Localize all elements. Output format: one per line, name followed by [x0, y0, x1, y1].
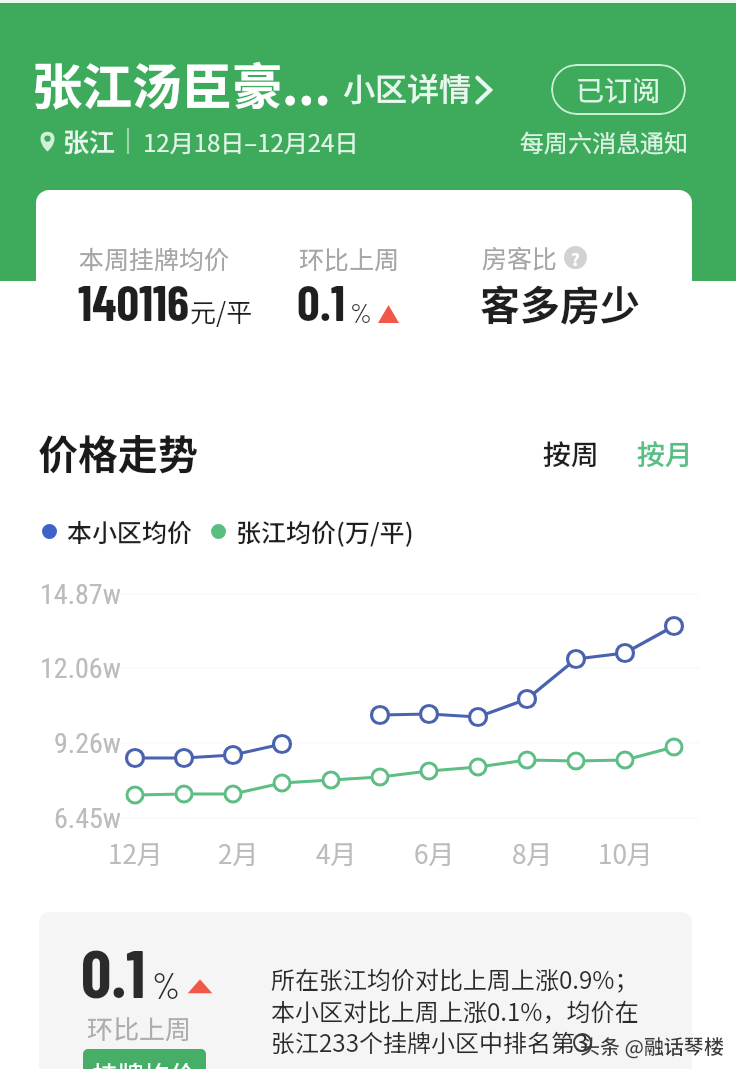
staticText: 9.26w — [54, 727, 122, 760]
staticText: ? — [571, 246, 580, 269]
staticText: 6.45w — [54, 802, 122, 835]
staticText: 张江汤臣豪... — [32, 47, 331, 119]
staticText: 本周挂牌均价 — [79, 240, 230, 276]
staticText: % — [350, 295, 372, 329]
button[interactable]: 小区详情 — [343, 64, 491, 110]
staticText: 所在张江均价对比上周上涨0.9%； — [271, 961, 639, 996]
staticText: 6月 — [414, 834, 455, 872]
staticText: 小区详情 — [343, 64, 472, 110]
staticText: 本小区对比上周上涨0.1%，均价在 — [271, 993, 639, 1028]
button[interactable]: 房客比说明 — [564, 246, 587, 269]
staticText: 张江233个挂牌小区中排名第3 — [271, 1024, 589, 1059]
staticText: 2月 — [218, 834, 259, 872]
staticText: 张江均价(万/平) — [236, 513, 414, 549]
button[interactable]: 按周 — [543, 433, 600, 474]
staticText: 8月 — [512, 834, 553, 872]
staticText: 0.1 — [81, 931, 146, 1011]
staticText: 14.87w — [40, 578, 121, 611]
button[interactable]: 按月 — [637, 433, 694, 474]
staticText: % — [152, 963, 181, 1006]
staticText: 140116 — [78, 271, 190, 331]
staticText: 12月18日–12月24日 — [143, 124, 359, 159]
staticText: 4月 — [316, 834, 357, 872]
staticText: 已订阅 — [576, 69, 661, 110]
button[interactable]: 已订阅 — [551, 64, 686, 115]
staticText: 按周 — [543, 433, 600, 474]
staticText: 本小区均价 — [67, 513, 193, 549]
staticText: 12.06w — [40, 652, 121, 685]
staticText: 挂牌均价 — [92, 1055, 197, 1069]
staticText: 房客比 — [482, 239, 558, 275]
staticText: 客多房少 — [480, 274, 640, 332]
staticText: 每周六消息通知 — [520, 124, 688, 159]
button[interactable]: 挂牌均价 — [92, 1055, 197, 1069]
staticText: 张江 — [63, 122, 116, 160]
staticText: 按月 — [637, 433, 694, 474]
staticText: 元/平 — [190, 292, 253, 330]
button[interactable] — [39, 912, 692, 1069]
staticText: 0.1 — [297, 271, 345, 331]
staticText: 环比上周 — [87, 1009, 192, 1047]
button[interactable] — [36, 190, 692, 371]
staticText: 头条 @融话琴楼 — [580, 1031, 724, 1060]
staticText: 10月 — [598, 834, 653, 872]
staticText: 12月 — [108, 834, 163, 872]
staticText: 环比上周 — [299, 240, 400, 276]
staticText: 价格走势 — [38, 423, 198, 481]
